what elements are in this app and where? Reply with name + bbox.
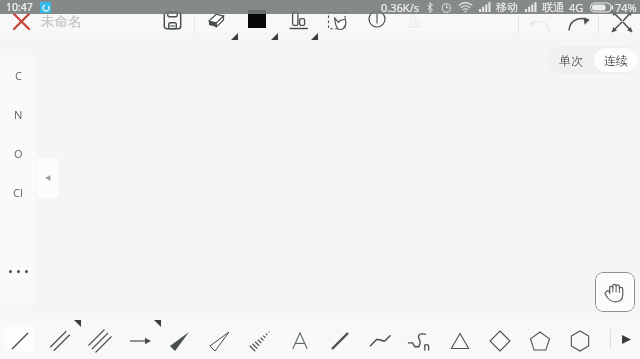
button[interactable]: Arrow (123, 323, 157, 359)
staticText: N (14, 107, 23, 122)
button[interactable]: Cl (0, 173, 36, 212)
button[interactable]: More tools (614, 327, 638, 351)
staticText: 移动 (496, 0, 518, 14)
button[interactable]: Polymer (403, 323, 437, 359)
button[interactable]: Single bond (3, 323, 37, 359)
button[interactable]: Wavy bond (363, 323, 397, 359)
staticText: 4G (569, 0, 584, 14)
button[interactable]: Hexagon (563, 323, 597, 359)
button[interactable]: Redo (566, 10, 592, 36)
staticText: O (14, 146, 23, 161)
staticText: Cl (13, 185, 23, 200)
button[interactable]: Select (324, 8, 350, 34)
button[interactable]: Wedge bond (163, 323, 197, 359)
button[interactable]: Undo (526, 12, 552, 38)
button[interactable]: Eraser (203, 7, 229, 33)
button[interactable]: 单次 (548, 46, 594, 74)
staticText: 74% (615, 0, 637, 14)
button[interactable]: 连续 (594, 48, 638, 72)
button[interactable]: N (0, 95, 36, 134)
button[interactable]: Collapse panel (37, 158, 59, 198)
staticText: 未命名 (41, 13, 82, 30)
staticText: 单次 (559, 53, 583, 68)
button[interactable]: Hashed bond (243, 323, 277, 359)
staticText: 10:47 (6, 0, 33, 14)
button[interactable]: Hollow wedge (203, 323, 237, 359)
button[interactable]: Double bond (43, 323, 77, 359)
button[interactable]: Disabled (402, 8, 428, 34)
button[interactable]: Bold bond (323, 323, 357, 359)
button[interactable]: Triangle (443, 323, 477, 359)
staticText: C (15, 68, 22, 83)
button[interactable]: Align (285, 7, 311, 33)
button[interactable]: Close (9, 9, 33, 33)
button[interactable]: Triple bond (83, 323, 117, 359)
button[interactable]: C (0, 56, 36, 95)
button[interactable]: More elements (0, 251, 36, 291)
staticText: 连续 (604, 53, 628, 68)
button[interactable]: Save (159, 7, 185, 33)
button[interactable]: Fullscreen (608, 8, 634, 34)
button[interactable]: O (0, 134, 36, 173)
staticText: 联通 (542, 0, 564, 14)
button[interactable]: Color (244, 6, 270, 32)
button[interactable]: Pentagon (523, 323, 557, 359)
button[interactable]: Text (283, 323, 317, 359)
button[interactable]: Rotate (364, 6, 390, 32)
staticText: 0.36K/s (381, 0, 419, 14)
button[interactable]: Pan tool (595, 272, 635, 312)
button[interactable]: Diamond (483, 323, 517, 359)
